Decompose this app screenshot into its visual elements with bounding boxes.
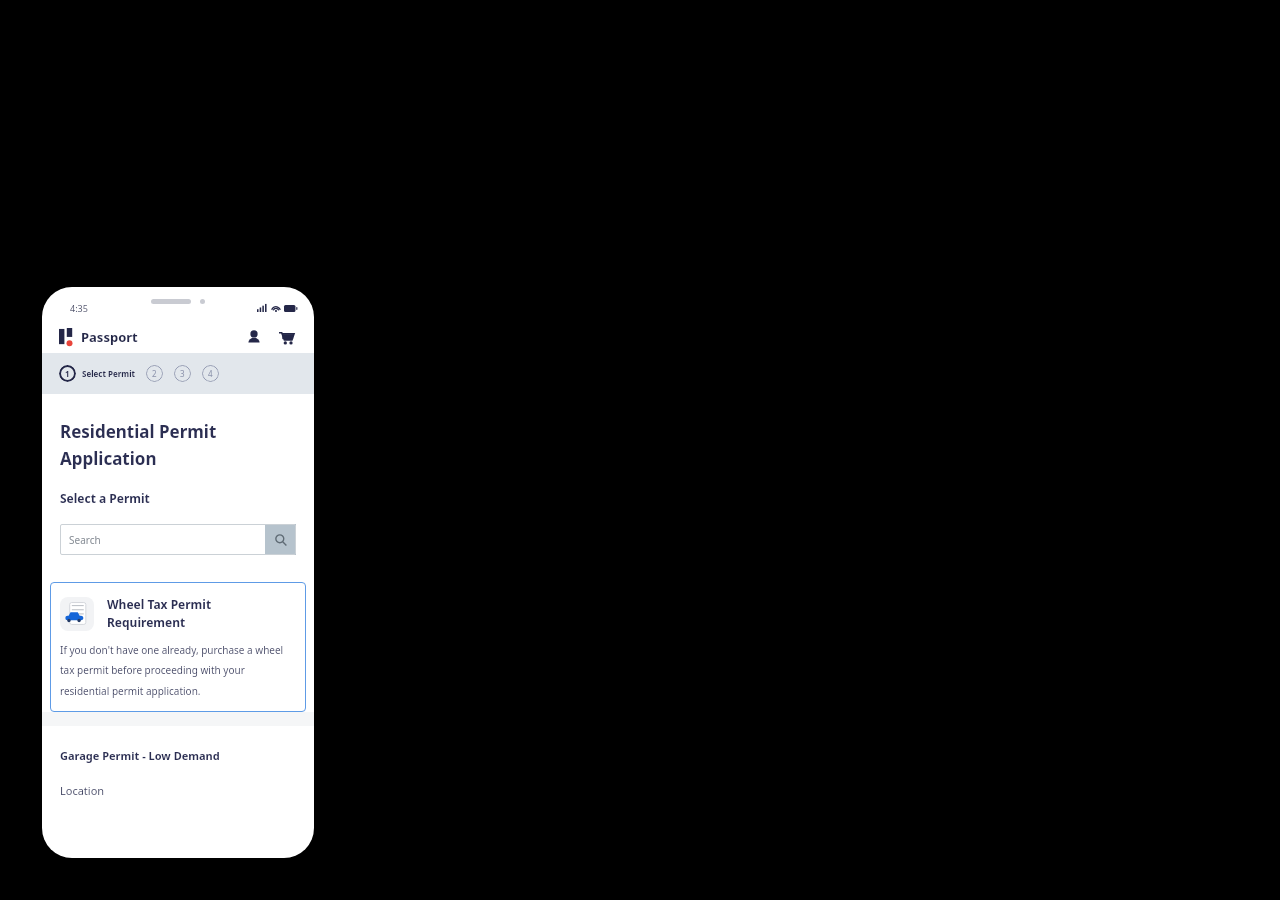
staticText: 3 <box>180 368 185 379</box>
staticText: Location <box>60 783 105 798</box>
staticText: Residential Permit Application <box>60 420 217 470</box>
button[interactable]: Search <box>60 524 296 555</box>
button[interactable]: Search <box>265 524 296 555</box>
staticText: Garage Permit - Low Demand <box>60 748 220 763</box>
staticText: Passport <box>81 328 138 346</box>
button[interactable]: Wheel Tax Permit Requirement <box>50 582 306 712</box>
button[interactable]: Account <box>243 326 265 348</box>
staticText: 4:35 <box>70 302 88 314</box>
staticText: If you don't have one already, purchase … <box>60 643 296 698</box>
button[interactable]: 3 <box>174 365 191 382</box>
staticText: Wheel Tax Permit Requirement <box>107 596 212 631</box>
button[interactable]: Cart <box>275 326 297 348</box>
staticText: 1 <box>65 368 70 379</box>
staticText: Search <box>69 533 101 547</box>
button[interactable]: 4 <box>202 365 219 382</box>
button[interactable]: 2 <box>146 365 163 382</box>
staticText: 2 <box>152 368 157 379</box>
staticText: Select Permit <box>82 368 136 379</box>
staticText: 4 <box>208 368 213 379</box>
staticText: Select a Permit <box>60 490 150 506</box>
button[interactable]: 1 <box>59 365 76 382</box>
